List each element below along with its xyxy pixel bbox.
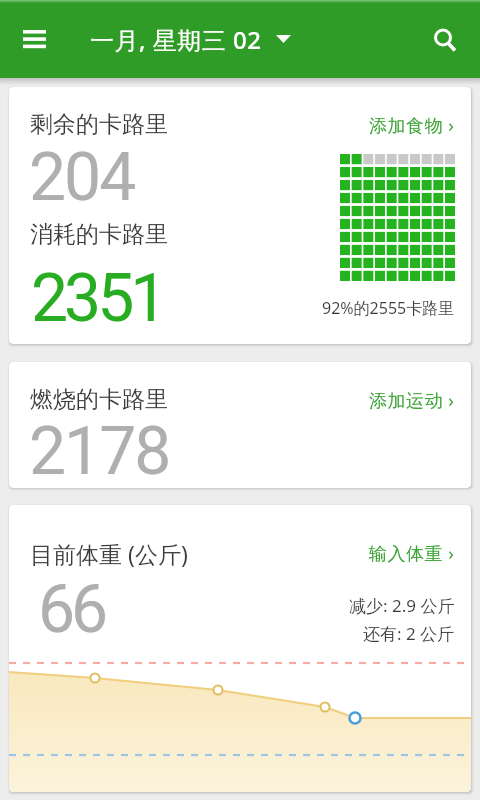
button[interactable]: 输入体重 › [369,541,455,566]
staticText: 还有: 2 公斤 [363,622,455,645]
staticText: 2178 [29,413,170,488]
staticText: 输入体重 › [369,541,455,566]
staticText: 204 [29,139,135,216]
staticText: 66 [38,571,105,648]
button[interactable]: 添加食物 › [369,113,455,138]
staticText: 减少: 2.9 公斤 [349,594,455,617]
staticText: 消耗的卡路里 [30,220,168,249]
staticText: 剩余的卡路里 [30,110,168,139]
staticText: 目前体重 (公斤) [30,538,188,569]
button[interactable] [12,25,56,53]
button[interactable]: 一月, 星期三 02 [90,0,291,78]
staticText: 添加运动 › [369,388,455,413]
button[interactable] [428,23,464,59]
staticText: 2351 [31,260,164,337]
staticText: 添加食物 › [369,113,455,138]
staticText: 92%的2555卡路里 [322,297,455,319]
staticText: 燃烧的卡路里 [30,385,168,414]
button[interactable]: 添加运动 › [369,388,455,413]
staticText: 一月, 星期三 02 [90,23,262,56]
